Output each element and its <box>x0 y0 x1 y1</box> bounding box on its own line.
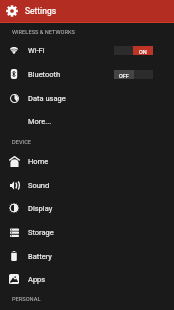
button[interactable]: Wi-Fi <box>0 38 174 62</box>
staticText: Bluetooth <box>28 70 61 79</box>
button[interactable]: Battery <box>0 244 174 268</box>
staticText: Apps <box>28 275 46 284</box>
staticText: Data usage <box>28 94 66 103</box>
staticText: Settings <box>25 6 57 16</box>
staticText: Wi-Fi <box>28 46 45 55</box>
button[interactable]: Storage <box>0 220 174 244</box>
staticText: More... <box>28 117 52 126</box>
button[interactable]: Apps <box>0 267 174 291</box>
button[interactable]: More... <box>0 109 174 133</box>
staticText: OFF <box>119 73 129 79</box>
staticText: DEVICE <box>12 139 32 146</box>
staticText: Sound <box>28 181 50 190</box>
staticText: Home <box>28 157 49 166</box>
staticText: ON <box>139 49 147 55</box>
button[interactable]: Turn on <box>114 70 153 79</box>
staticText: Display <box>28 204 53 213</box>
staticText: Battery <box>28 252 52 261</box>
button[interactable]: Display <box>0 196 174 220</box>
button[interactable]: Data usage <box>0 86 174 110</box>
button[interactable]: Sound <box>0 173 174 197</box>
button[interactable]: Settings <box>0 0 174 23</box>
button[interactable]: Home <box>0 149 174 173</box>
staticText: WIRELESS & NETWORKS <box>12 29 75 36</box>
button[interactable]: Turn off <box>114 46 153 55</box>
staticText: Storage <box>28 228 54 237</box>
staticText: PERSONAL <box>12 296 41 303</box>
button[interactable]: Bluetooth <box>0 62 174 86</box>
